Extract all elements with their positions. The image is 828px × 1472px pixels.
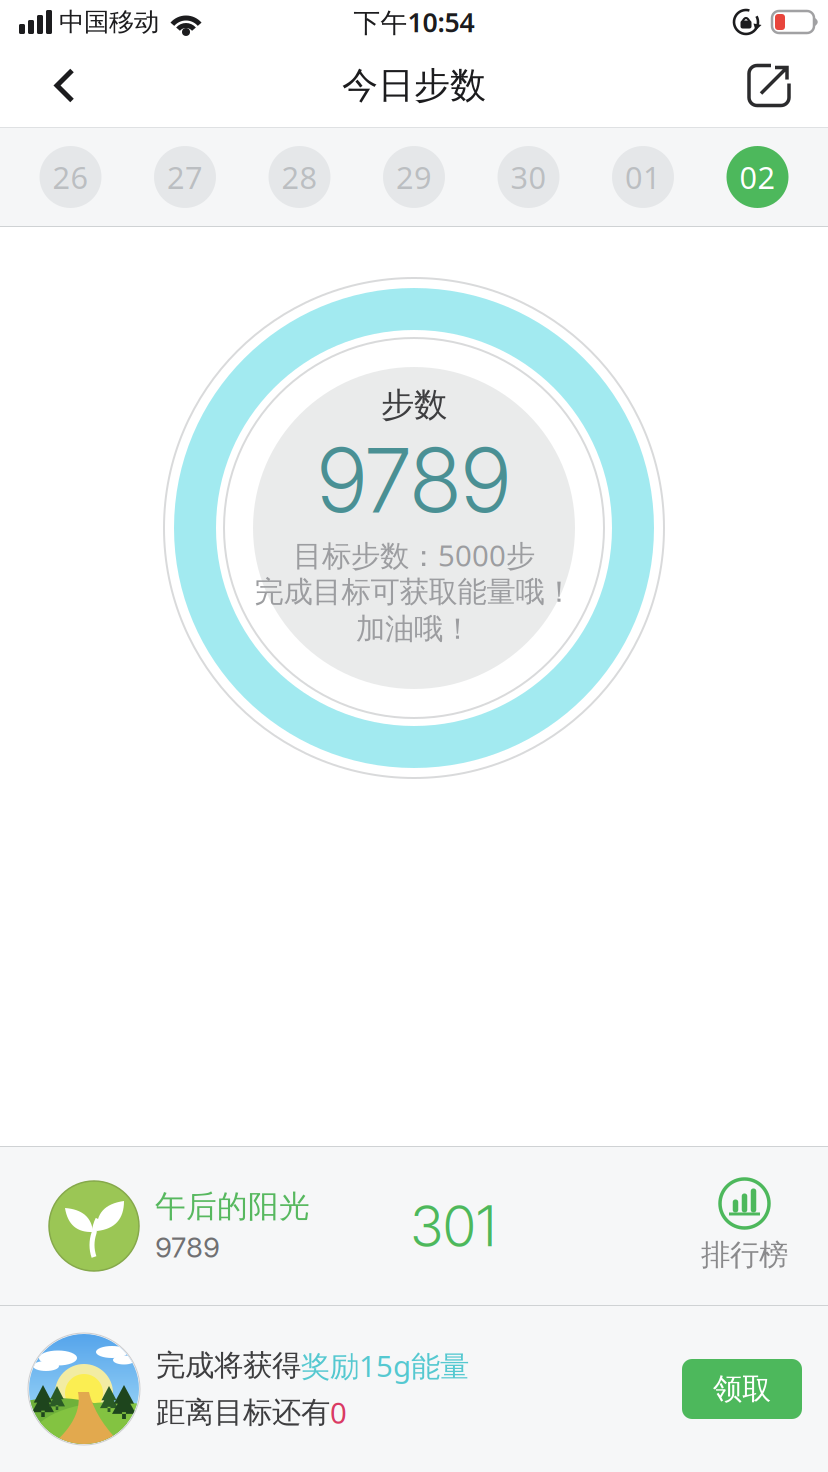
button[interactable]: Share (728, 64, 828, 106)
button[interactable]: 26 (39, 146, 101, 208)
staticText: 9789 (317, 427, 511, 533)
staticText: 完成将获得 (156, 1347, 301, 1383)
staticText: 28 (281, 157, 317, 197)
staticText: 今日步数 (342, 63, 486, 108)
button[interactable]: 01 (612, 146, 674, 208)
staticText: 29 (396, 157, 432, 197)
button[interactable]: 领取 (682, 1359, 802, 1419)
button[interactable]: 27 (154, 146, 216, 208)
staticText: 0 (330, 1393, 347, 1432)
button[interactable]: Back (0, 69, 95, 101)
staticText: 步数 (381, 384, 447, 425)
staticText: 完成目标可获取能量哦！ (254, 574, 573, 610)
button[interactable]: 排行榜 (701, 1179, 828, 1273)
staticText: 午后的阳光 (155, 1188, 310, 1225)
button[interactable]: 02 (726, 146, 788, 208)
staticText: 排行榜 (701, 1237, 788, 1273)
staticText: 02 (739, 157, 775, 197)
staticText: 目标步数：5000步 (293, 535, 535, 574)
staticText: 30 (510, 157, 546, 197)
staticText: 26 (52, 157, 88, 197)
staticText: 距离目标还有 (156, 1394, 330, 1430)
button[interactable]: 30 (497, 146, 559, 208)
staticText: 加油哦！ (356, 611, 472, 647)
button[interactable]: 29 (383, 146, 445, 208)
staticText: 下午10:54 (353, 4, 474, 40)
staticText: 301 (410, 1192, 496, 1260)
staticText: 奖励15g能量 (301, 1346, 469, 1385)
staticText: 01 (625, 157, 661, 197)
button[interactable]: 28 (268, 146, 330, 208)
staticText: 领取 (713, 1371, 771, 1407)
staticText: 中国移动 (59, 6, 159, 37)
staticText: 27 (167, 157, 203, 197)
staticText: 9789 (155, 1230, 220, 1264)
